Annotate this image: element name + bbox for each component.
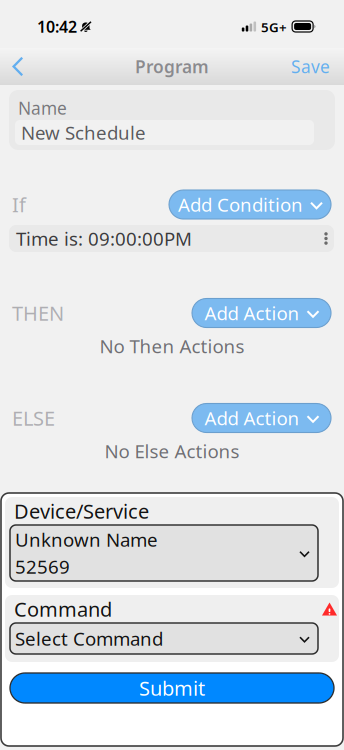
staticText: Add Condition [178, 192, 303, 217]
staticText: New Schedule [21, 120, 146, 145]
button[interactable]: Submit [10, 673, 334, 703]
staticText: Name [18, 96, 67, 119]
button[interactable]: Unknown Name [10, 525, 318, 581]
button[interactable]: Back [0, 48, 36, 85]
staticText: If [12, 191, 26, 218]
button[interactable]: Add Action [192, 403, 331, 432]
button[interactable]: Time is: 09:00:00PM [9, 225, 334, 252]
staticText: 10:42 [37, 16, 77, 37]
button[interactable]: Add Action [192, 298, 331, 327]
staticText: No Else Actions [104, 439, 239, 463]
staticText: Add Action [204, 301, 299, 325]
button[interactable]: Select Command [10, 623, 318, 654]
staticText: Unknown Name [15, 527, 158, 552]
staticText: THEN [12, 300, 64, 326]
staticText: Time is: 09:00:00PM [16, 226, 192, 251]
staticText: 5G+ [261, 18, 287, 36]
staticText: Add Action [204, 406, 299, 430]
button[interactable]: Save [278, 48, 344, 85]
staticText: Program [135, 55, 209, 78]
staticText: ELSE [12, 405, 55, 431]
staticText: Submit [139, 675, 205, 701]
staticText: Command [14, 596, 112, 622]
button[interactable]: Add Condition [169, 190, 331, 219]
staticText: Select Command [15, 626, 163, 651]
staticText: Save [291, 55, 330, 78]
staticText: No Then Actions [99, 334, 244, 358]
staticText: 52569 [15, 554, 70, 579]
staticText: Device/Service [14, 498, 149, 524]
